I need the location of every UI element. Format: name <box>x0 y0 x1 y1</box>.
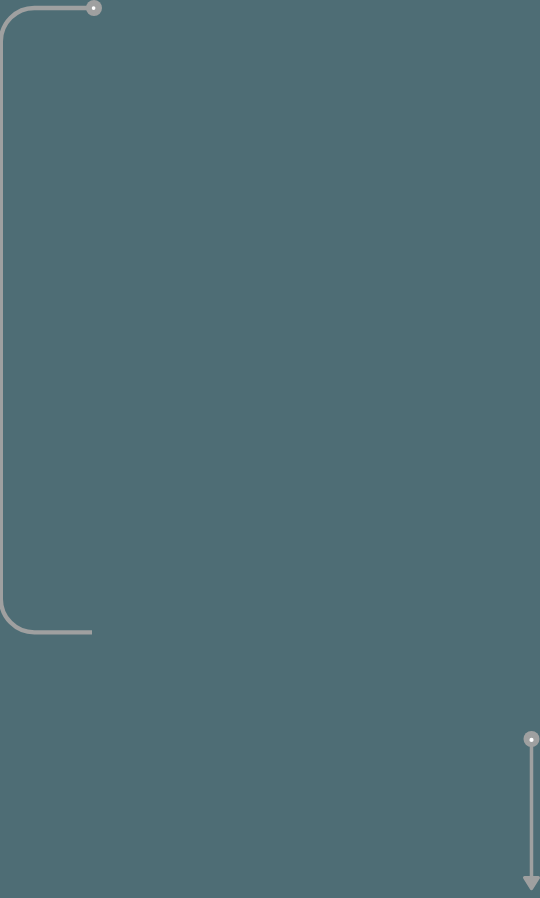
button[interactable]: Flow direction arrow <box>522 876 540 894</box>
button[interactable]: Connector start handle <box>86 0 102 16</box>
button[interactable]: Connector end handle <box>524 731 540 747</box>
